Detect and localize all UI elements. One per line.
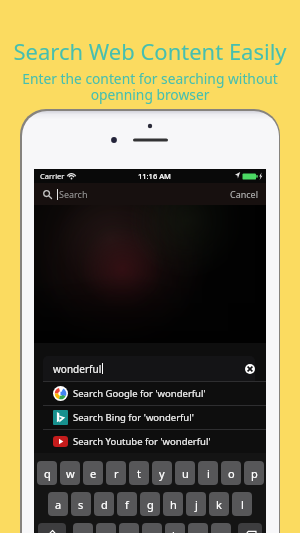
button[interactable]: k <box>209 492 229 516</box>
staticText: u <box>182 466 189 481</box>
staticText: f <box>125 497 129 512</box>
button[interactable] <box>43 356 255 381</box>
button[interactable]: Clear text <box>245 364 255 374</box>
button[interactable]: a <box>48 492 68 516</box>
staticText: s <box>78 497 84 512</box>
button[interactable]: f <box>117 492 137 516</box>
button[interactable]: e <box>83 461 103 485</box>
staticText: Search <box>59 188 88 200</box>
button[interactable]: n <box>188 523 208 533</box>
staticText: 11:16 AM <box>138 171 171 181</box>
button[interactable]: b <box>165 523 185 533</box>
staticText: i <box>207 466 210 481</box>
button[interactable]: y <box>152 461 172 485</box>
button[interactable]: o <box>221 461 241 485</box>
button[interactable]: w <box>60 461 80 485</box>
button[interactable]: Backspace <box>238 523 262 533</box>
staticText: g <box>147 497 154 512</box>
button[interactable]: c <box>119 523 139 533</box>
staticText: a <box>55 497 62 512</box>
button[interactable]: Search Bing for 'wonderful' <box>34 406 266 429</box>
button[interactable]: i <box>198 461 218 485</box>
staticText: Search Google for 'wonderful' <box>73 387 206 400</box>
staticText: j <box>195 497 198 512</box>
staticText: Search Youtube for 'wonderful' <box>73 435 211 448</box>
button[interactable]: x <box>96 523 116 533</box>
staticText: o <box>228 466 235 481</box>
button[interactable]: j <box>186 492 206 516</box>
staticText: d <box>101 497 108 512</box>
button[interactable]: d <box>94 492 114 516</box>
button[interactable]: Cancel <box>228 185 261 203</box>
button[interactable]: m <box>211 523 231 533</box>
button[interactable]: Search Google for 'wonderful' <box>34 382 266 405</box>
staticText: p <box>251 466 258 481</box>
staticText: Enter the content for searching without … <box>0 69 300 104</box>
staticText: w <box>66 466 75 481</box>
button[interactable]: s <box>71 492 91 516</box>
button[interactable]: g <box>140 492 160 516</box>
staticText: h <box>170 497 177 512</box>
staticText: Search Web Content Easily <box>0 36 300 66</box>
button[interactable]: l <box>232 492 252 516</box>
staticText: t <box>137 466 141 481</box>
staticText: k <box>216 497 222 512</box>
button[interactable]: Shift <box>38 523 66 533</box>
button[interactable]: z <box>73 523 93 533</box>
button[interactable]: q <box>37 461 57 485</box>
staticText: Carrier <box>40 171 65 181</box>
staticText: wonderful <box>53 362 102 376</box>
staticText: y <box>159 466 165 481</box>
staticText: e <box>90 466 97 481</box>
button[interactable]: Search Youtube for 'wonderful' <box>34 430 266 453</box>
button[interactable]: p <box>244 461 264 485</box>
staticText: b <box>172 528 179 533</box>
button[interactable]: u <box>175 461 195 485</box>
button[interactable]: h <box>163 492 183 516</box>
button[interactable]: v <box>142 523 162 533</box>
staticText: q <box>44 466 51 481</box>
staticText: r <box>114 466 119 481</box>
button[interactable]: r <box>106 461 126 485</box>
button[interactable]: t <box>129 461 149 485</box>
staticText: l <box>241 497 244 512</box>
staticText: Cancel <box>230 188 259 200</box>
staticText: Search Bing for 'wonderful' <box>73 411 194 424</box>
